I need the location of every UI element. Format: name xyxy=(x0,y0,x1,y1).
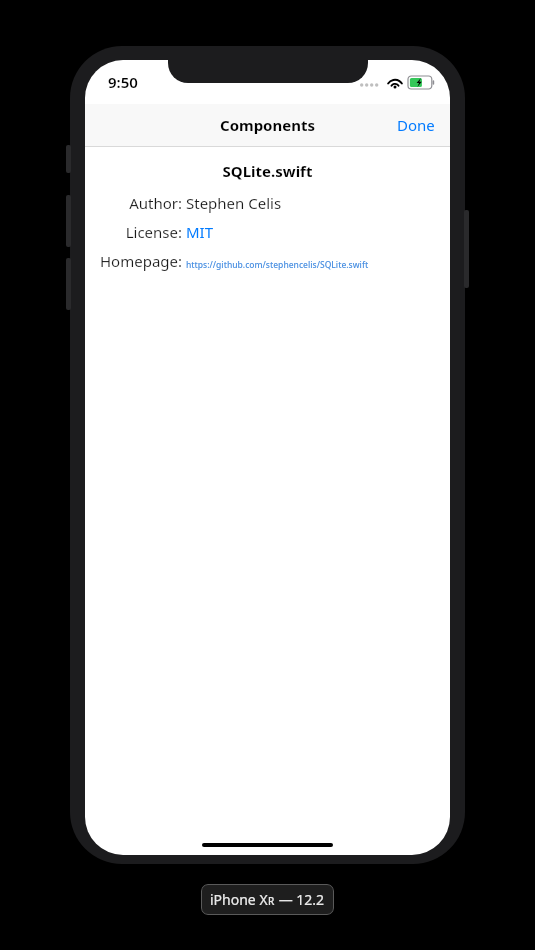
other: Cellular signal xyxy=(360,78,382,88)
button[interactable]: https://github.com/stephencelis/SQLite.s… xyxy=(186,259,369,271)
staticText: https://github.com/stephencelis/SQLite.s… xyxy=(186,259,369,271)
staticText: 9:50 xyxy=(108,72,138,92)
staticText: iPhone X xyxy=(210,890,268,909)
staticText: R xyxy=(268,894,275,908)
button[interactable]: MIT xyxy=(186,222,214,242)
staticText: MIT xyxy=(186,222,214,242)
staticText: License: xyxy=(125,222,182,242)
other: Battery charging xyxy=(408,76,434,89)
staticText: SQLite.swift xyxy=(85,161,450,181)
button[interactable]: Done xyxy=(382,107,450,143)
staticText: Author: xyxy=(129,193,182,213)
staticText: — 12.2 xyxy=(275,890,325,909)
staticText: Homepage: xyxy=(99,251,182,271)
staticText: Components xyxy=(220,115,315,135)
other: Wi-Fi xyxy=(387,77,403,89)
staticText: Stephen Celis xyxy=(186,193,282,213)
staticText: Done xyxy=(397,115,435,135)
